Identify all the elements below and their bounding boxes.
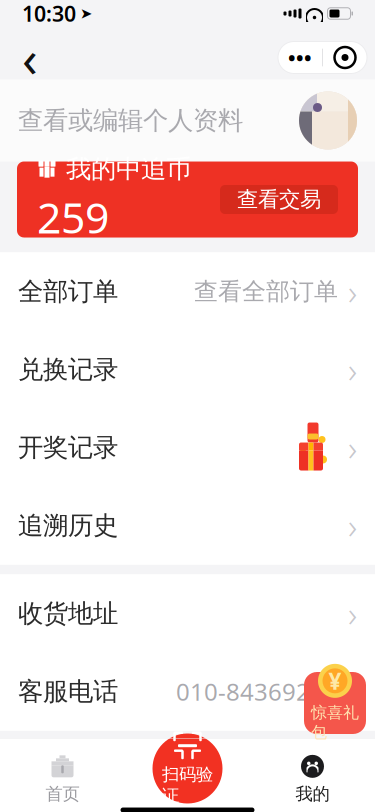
- button[interactable]: 开奖记录: [0, 408, 375, 486]
- button[interactable]: More: [278, 41, 322, 73]
- staticText: 追溯历史: [18, 510, 118, 541]
- staticText: ›: [348, 346, 357, 392]
- staticText: 查看全部订单: [194, 277, 338, 306]
- button[interactable]: 查看或编辑个人资料: [0, 79, 375, 161]
- staticText: ›: [348, 668, 357, 714]
- staticText: ›: [348, 424, 357, 470]
- staticText: 我的中追币: [66, 154, 191, 185]
- button[interactable]: 全部订单: [0, 252, 375, 330]
- button[interactable]: Back: [8, 35, 52, 79]
- button[interactable]: 收货地址: [0, 574, 375, 652]
- staticText: 259: [37, 189, 109, 245]
- staticText: 开奖记录: [18, 432, 118, 463]
- staticText: 收货地址: [18, 598, 118, 629]
- staticText: 惊喜礼包: [311, 703, 359, 742]
- button[interactable]: ¥: [304, 672, 375, 734]
- staticText: ›: [348, 502, 357, 548]
- staticText: 我的: [295, 783, 329, 805]
- button[interactable]: 兑换记录: [0, 330, 375, 408]
- staticText: 首页: [45, 783, 79, 805]
- staticText: 扫码验证: [162, 764, 213, 806]
- staticText: ➤: [80, 5, 92, 22]
- button[interactable]: 首页: [0, 744, 125, 812]
- staticText: •••: [288, 44, 312, 71]
- staticText: 查看或编辑个人资料: [18, 105, 243, 136]
- staticText: 查看交易: [237, 186, 321, 213]
- staticText: ›: [348, 268, 357, 314]
- staticText: 全部订单: [18, 276, 118, 307]
- button[interactable]: Close: [323, 41, 367, 73]
- button[interactable]: 追溯历史: [0, 486, 375, 564]
- button[interactable]: 扫码验证: [152, 733, 222, 803]
- button[interactable]: 客服电话: [0, 652, 375, 730]
- button[interactable]: 我的: [250, 744, 375, 812]
- staticText: 10:30: [22, 0, 76, 28]
- button[interactable]: 查看交易: [220, 185, 338, 214]
- staticText: 兑换记录: [18, 354, 118, 385]
- staticText: 010-84369295: [176, 676, 338, 707]
- staticText: ‹: [22, 24, 38, 91]
- staticText: ¥: [328, 666, 341, 696]
- staticText: 客服电话: [18, 676, 118, 707]
- staticText: ›: [348, 590, 357, 636]
